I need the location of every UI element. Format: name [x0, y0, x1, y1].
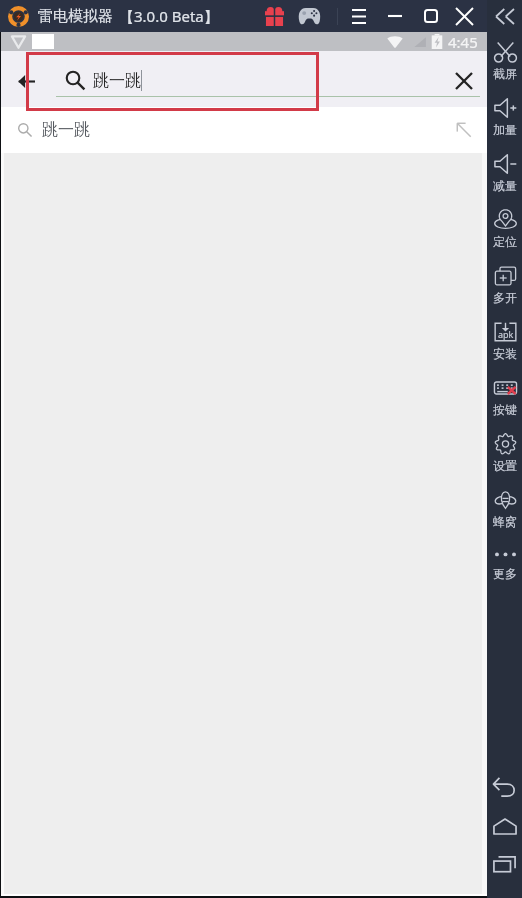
staticText: 更多 — [493, 566, 517, 581]
button[interactable]: 设置 — [487, 429, 522, 485]
button[interactable]: 定位 — [487, 205, 522, 261]
button[interactable]: 蜂窝 — [487, 485, 522, 541]
staticText: 截屏 — [493, 66, 517, 81]
staticText: 跳一跳 — [42, 120, 90, 140]
button[interactable]: apk — [487, 317, 522, 373]
button[interactable]: 截屏 — [487, 37, 522, 93]
button[interactable]: Gifts — [260, 2, 288, 30]
button[interactable]: Clear query — [448, 65, 480, 97]
button[interactable]: Recent apps — [487, 845, 522, 883]
button[interactable]: 减量 — [487, 149, 522, 205]
button[interactable]: Home — [487, 807, 522, 845]
button[interactable]: Close — [450, 2, 478, 30]
button[interactable]: 更多 — [487, 541, 522, 597]
staticText: 加量 — [493, 122, 517, 137]
staticText: 安装 — [493, 346, 517, 361]
button[interactable]: Maximize — [418, 3, 444, 29]
button[interactable]: 加量 — [487, 93, 522, 149]
staticText: 按键 — [493, 402, 517, 417]
button[interactable]: Minimize — [382, 3, 408, 29]
button[interactable]: Insert suggestion — [446, 112, 482, 148]
staticText: 跳一跳 — [93, 71, 141, 91]
staticText: 雷电模拟器 — [38, 7, 113, 26]
staticText: 蜂窝 — [493, 514, 517, 529]
staticText: 设置 — [493, 458, 517, 473]
staticText: 定位 — [493, 234, 517, 249]
staticText: 减量 — [493, 178, 517, 193]
button[interactable]: Back — [487, 767, 522, 807]
button[interactable]: Menu — [346, 3, 372, 29]
staticText: 多开 — [493, 290, 517, 305]
button[interactable]: 跳一跳 — [1, 107, 487, 153]
button[interactable]: Game controller — [295, 2, 323, 30]
staticText: apk — [498, 328, 514, 340]
button[interactable]: Collapse sidebar — [487, 0, 522, 32]
staticText: 【3.0.0 Beta】 — [119, 6, 219, 26]
button[interactable]: 多开 — [487, 261, 522, 317]
button[interactable]: Navigate up — [12, 67, 40, 95]
button[interactable]: 按键 — [487, 373, 522, 429]
staticText: 4:45 — [448, 32, 478, 51]
